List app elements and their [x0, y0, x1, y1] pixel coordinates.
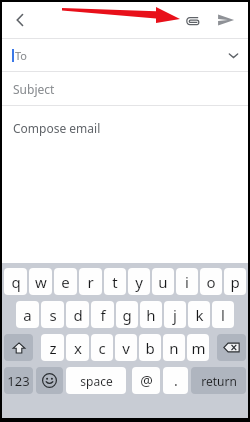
- button[interactable]: n: [163, 334, 185, 361]
- button[interactable]: Attach file: [176, 4, 208, 36]
- staticText: w: [35, 272, 47, 292]
- button[interactable]: @: [132, 367, 160, 394]
- staticText: b: [145, 338, 155, 358]
- staticText: y: [135, 272, 143, 292]
- button[interactable]: 123: [4, 367, 33, 394]
- staticText: To: [15, 48, 28, 63]
- button[interactable]: g: [116, 301, 138, 328]
- staticText: q: [11, 272, 21, 292]
- staticText: Subject: [13, 81, 55, 97]
- button[interactable]: x: [66, 334, 89, 361]
- button[interactable]: i: [176, 268, 198, 295]
- staticText: g: [122, 305, 132, 325]
- button[interactable]: t: [104, 268, 126, 295]
- button[interactable]: j: [164, 301, 186, 328]
- button[interactable]: s: [41, 301, 64, 328]
- button[interactable]: Subject: [2, 72, 248, 105]
- button[interactable]: u: [152, 268, 174, 295]
- button[interactable]: q: [4, 268, 27, 295]
- button[interactable]: w: [29, 268, 52, 295]
- staticText: z: [49, 338, 57, 358]
- button[interactable]: Shift: [4, 334, 33, 361]
- button[interactable]: m: [187, 334, 209, 361]
- button[interactable]: l: [212, 301, 234, 328]
- staticText: i: [185, 272, 189, 292]
- button[interactable]: Compose email: [2, 106, 248, 263]
- staticText: a: [23, 305, 32, 325]
- button[interactable]: space: [66, 367, 126, 394]
- staticText: @: [140, 371, 153, 390]
- staticText: n: [169, 338, 179, 358]
- button[interactable]: v: [115, 334, 137, 361]
- staticText: h: [146, 305, 156, 325]
- button[interactable]: Back: [2, 2, 38, 38]
- staticText: r: [87, 272, 94, 292]
- staticText: t: [112, 272, 118, 292]
- staticText: x: [74, 338, 82, 358]
- button[interactable]: r: [79, 268, 102, 295]
- button[interactable]: Emoji: [36, 367, 63, 394]
- staticText: j: [173, 305, 177, 325]
- button[interactable]: return: [191, 367, 246, 394]
- button[interactable]: d: [66, 301, 89, 328]
- staticText: m: [191, 338, 206, 358]
- button[interactable]: k: [188, 301, 210, 328]
- button[interactable]: f: [91, 301, 114, 328]
- staticText: l: [221, 305, 225, 325]
- staticText: v: [122, 338, 130, 358]
- button[interactable]: o: [200, 268, 222, 295]
- staticText: o: [206, 272, 216, 292]
- staticText: c: [98, 338, 106, 358]
- staticText: .: [174, 371, 178, 390]
- button[interactable]: p: [224, 268, 246, 295]
- staticText: return: [201, 373, 237, 389]
- staticText: e: [61, 272, 70, 292]
- staticText: 123: [7, 372, 30, 390]
- button[interactable]: c: [91, 334, 113, 361]
- button[interactable]: z: [41, 334, 64, 361]
- staticText: f: [100, 305, 106, 325]
- button[interactable]: Backspace: [217, 334, 246, 361]
- staticText: Compose email: [13, 120, 101, 136]
- button[interactable]: h: [140, 301, 162, 328]
- staticText: k: [195, 305, 204, 325]
- button[interactable]: e: [54, 268, 77, 295]
- staticText: p: [230, 272, 240, 292]
- staticText: s: [49, 305, 57, 325]
- button[interactable]: Send: [210, 4, 242, 36]
- button[interactable]: .: [163, 367, 188, 394]
- button[interactable]: a: [16, 301, 39, 328]
- button[interactable]: y: [128, 268, 150, 295]
- staticText: space: [80, 373, 113, 389]
- button[interactable]: b: [139, 334, 161, 361]
- staticText: u: [158, 272, 168, 292]
- staticText: d: [73, 305, 83, 325]
- button[interactable]: To: [2, 39, 248, 71]
